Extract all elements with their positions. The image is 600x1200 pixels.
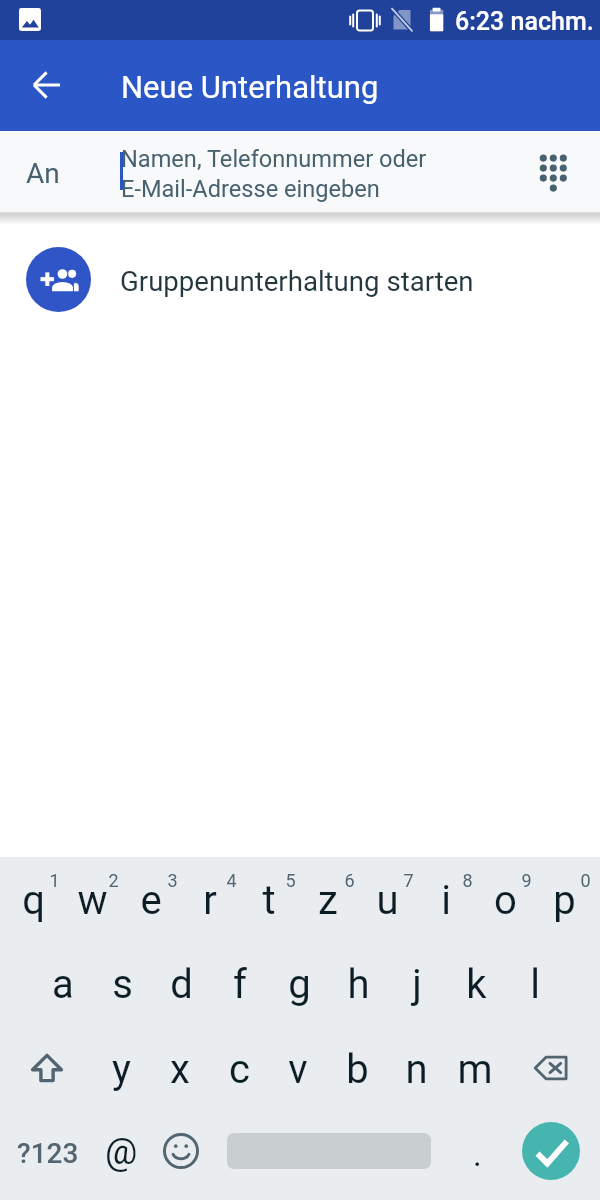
- button[interactable]: q: [4, 861, 63, 939]
- button[interactable]: f: [211, 945, 270, 1023]
- staticText: v: [288, 1046, 308, 1093]
- staticText: r: [203, 877, 217, 924]
- staticText: z: [318, 877, 338, 924]
- staticText: n: [405, 1046, 428, 1093]
- button[interactable]: x: [151, 1029, 210, 1107]
- staticText: i: [441, 877, 451, 924]
- button[interactable]: k: [447, 945, 506, 1023]
- button[interactable]: c: [210, 1029, 269, 1107]
- button[interactable]: o: [476, 861, 535, 939]
- button[interactable]: Umschalt: [16, 1029, 78, 1107]
- button[interactable]: t: [240, 861, 299, 939]
- staticText: c: [229, 1046, 250, 1093]
- staticText: u: [376, 877, 399, 924]
- button[interactable]: w: [63, 861, 122, 939]
- button[interactable]: h: [329, 945, 388, 1023]
- staticText: 9: [521, 870, 532, 891]
- staticText: ?123: [17, 1137, 79, 1170]
- staticText: 5: [285, 870, 296, 891]
- button[interactable]: s: [93, 945, 152, 1023]
- staticText: .: [473, 1135, 482, 1174]
- button[interactable]: Emoji: [152, 1113, 209, 1189]
- staticText: An: [26, 157, 60, 190]
- button[interactable]: r: [181, 861, 240, 939]
- button[interactable]: a: [34, 945, 93, 1023]
- staticText: 6:23 nachm.: [455, 7, 594, 36]
- staticText: Namen, Telefonnummer oder: [121, 145, 427, 173]
- staticText: y: [112, 1046, 131, 1093]
- staticText: e: [140, 877, 162, 924]
- staticText: j: [412, 961, 422, 1008]
- staticText: 4: [226, 870, 237, 891]
- button[interactable]: y: [92, 1029, 151, 1107]
- button[interactable]: p: [535, 861, 594, 939]
- button[interactable]: Gruppenunterhaltung starten: [0, 224, 600, 334]
- staticText: Neue Unterhaltung: [121, 69, 379, 105]
- staticText: t: [262, 877, 276, 924]
- staticText: @: [105, 1131, 138, 1173]
- staticText: b: [346, 1046, 369, 1093]
- staticText: a: [52, 961, 74, 1008]
- staticText: o: [494, 877, 517, 924]
- staticText: d: [170, 961, 193, 1008]
- staticText: 0: [580, 870, 591, 891]
- staticText: k: [466, 961, 487, 1008]
- button[interactable]: u: [358, 861, 417, 939]
- staticText: p: [553, 877, 576, 924]
- staticText: l: [530, 961, 540, 1008]
- staticText: 6: [344, 870, 355, 891]
- button[interactable]: n: [387, 1029, 446, 1107]
- staticText: m: [457, 1046, 493, 1093]
- staticText: x: [170, 1046, 190, 1093]
- staticText: w: [77, 877, 108, 924]
- staticText: f: [233, 961, 247, 1008]
- button[interactable]: ?123: [10, 1115, 86, 1191]
- button[interactable]: l: [506, 945, 565, 1023]
- button[interactable]: e: [122, 861, 181, 939]
- button[interactable]: Zurück: [20, 58, 74, 112]
- button[interactable]: .: [450, 1120, 504, 1196]
- button[interactable]: Löschen: [520, 1029, 582, 1107]
- staticText: 2: [108, 870, 119, 891]
- button[interactable]: Senden: [522, 1122, 580, 1180]
- button[interactable]: m: [446, 1029, 505, 1107]
- button[interactable]: @: [93, 1114, 150, 1190]
- button[interactable]: Wähltastatur: [527, 146, 579, 198]
- staticText: 8: [462, 870, 473, 891]
- button[interactable]: g: [270, 945, 329, 1023]
- staticText: 3: [167, 870, 178, 891]
- staticText: E-Mail-Adresse eingeben: [121, 175, 380, 203]
- staticText: g: [288, 961, 311, 1008]
- staticText: h: [347, 961, 370, 1008]
- button[interactable]: j: [388, 945, 447, 1023]
- button[interactable]: i: [417, 861, 476, 939]
- staticText: 7: [403, 870, 414, 891]
- button[interactable]: z: [299, 861, 358, 939]
- button[interactable]: b: [328, 1029, 387, 1107]
- staticText: Gruppenunterhaltung starten: [120, 265, 474, 297]
- button[interactable]: v: [269, 1029, 328, 1107]
- staticText: s: [112, 961, 133, 1008]
- staticText: q: [22, 877, 45, 924]
- staticText: 1: [49, 870, 60, 891]
- button[interactable]: d: [152, 945, 211, 1023]
